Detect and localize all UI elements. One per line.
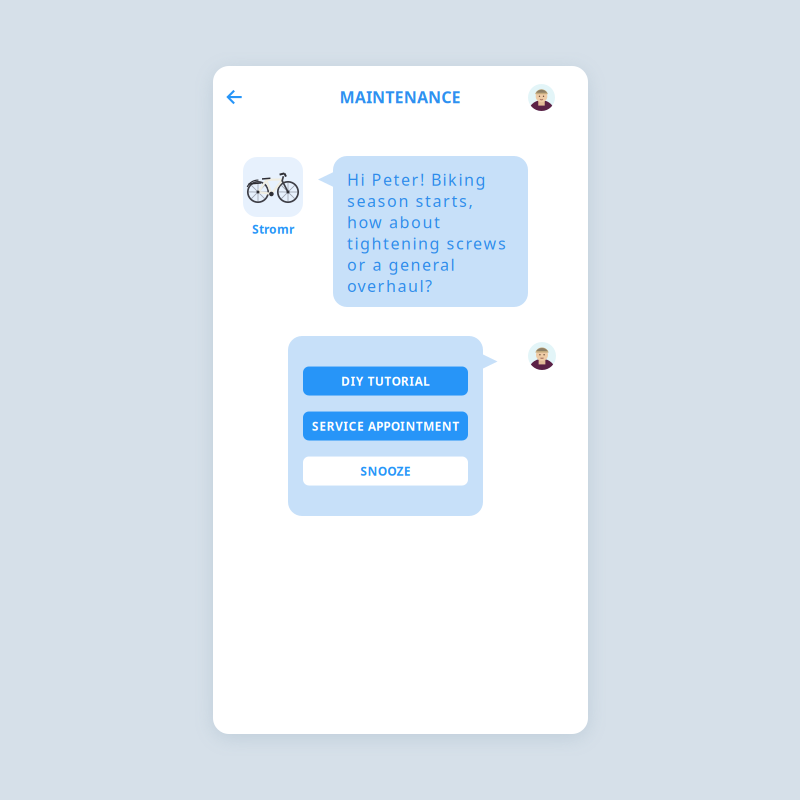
- button[interactable]: DIY TUTORIAL: [303, 366, 468, 395]
- staticText: MAINTENANCE: [339, 86, 460, 108]
- button[interactable]: Profile: [528, 84, 555, 111]
- staticText: Hi Peter! Biking season starts, how abou…: [347, 169, 506, 296]
- staticText: SNOOZE: [360, 463, 411, 479]
- button[interactable]: Peter: [528, 342, 556, 370]
- button[interactable]: SERVICE APPOINTMENT: [303, 411, 468, 440]
- button[interactable]: Back: [217, 78, 251, 116]
- button[interactable]: SNOOZE: [303, 456, 468, 485]
- button[interactable]: Stromr: [243, 157, 303, 217]
- staticText: DIY TUTORIAL: [341, 373, 430, 389]
- staticText: Stromr: [252, 221, 294, 237]
- staticText: SERVICE APPOINTMENT: [312, 418, 459, 434]
